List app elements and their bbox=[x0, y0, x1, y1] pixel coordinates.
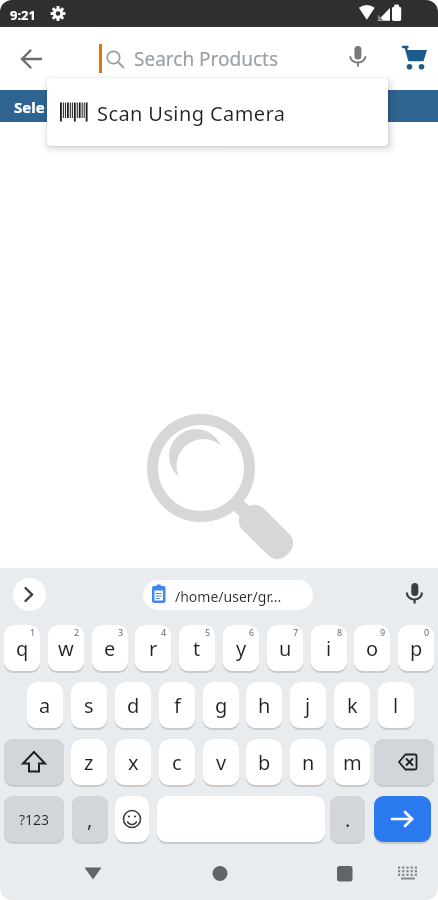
button[interactable]: m bbox=[334, 739, 370, 787]
button[interactable]: q bbox=[4, 625, 40, 673]
staticText: s bbox=[84, 692, 94, 719]
staticText: 9 bbox=[380, 626, 386, 638]
button[interactable]: u bbox=[267, 625, 303, 673]
staticText: . bbox=[345, 806, 351, 833]
button[interactable]: a bbox=[27, 682, 63, 730]
staticText: l bbox=[393, 692, 399, 719]
staticText: w bbox=[58, 635, 74, 662]
staticText: 8 bbox=[337, 626, 343, 638]
staticText: r bbox=[149, 635, 158, 662]
staticText: , bbox=[87, 806, 93, 833]
button[interactable]: x bbox=[115, 739, 151, 787]
staticText: v bbox=[216, 749, 227, 776]
staticText: o bbox=[366, 635, 379, 662]
staticText: a bbox=[39, 692, 51, 719]
staticText: d bbox=[127, 692, 140, 719]
staticText: g bbox=[215, 692, 228, 719]
staticText: j bbox=[305, 692, 311, 719]
staticText: f bbox=[174, 692, 181, 719]
staticText: 9:21 bbox=[10, 6, 36, 24]
staticText: b bbox=[258, 749, 271, 776]
staticText: 3 bbox=[118, 626, 124, 638]
button[interactable]: c bbox=[159, 739, 195, 787]
staticText: 2 bbox=[74, 626, 80, 638]
staticText: ?123 bbox=[19, 810, 50, 829]
button[interactable] bbox=[47, 78, 388, 146]
button[interactable]: t bbox=[179, 625, 215, 673]
staticText: Scan Using Camera bbox=[97, 100, 286, 127]
button[interactable]: k bbox=[334, 682, 370, 730]
staticText: n bbox=[302, 749, 315, 776]
staticText: t bbox=[193, 635, 201, 662]
staticText: Sele bbox=[14, 97, 45, 117]
staticText: 4 bbox=[161, 626, 167, 638]
button[interactable]: d bbox=[115, 682, 151, 730]
staticText: i bbox=[326, 635, 332, 662]
button[interactable] bbox=[10, 38, 52, 80]
button[interactable]: f bbox=[159, 682, 195, 730]
staticText: 5 bbox=[205, 626, 211, 638]
staticText: z bbox=[84, 749, 94, 776]
staticText: 7 bbox=[293, 626, 299, 638]
button[interactable]: ?123 bbox=[4, 796, 64, 844]
button[interactable] bbox=[374, 739, 434, 787]
button[interactable] bbox=[4, 739, 64, 787]
staticText: 6 bbox=[249, 626, 255, 638]
staticText: p bbox=[410, 635, 423, 662]
button[interactable] bbox=[338, 38, 378, 78]
staticText: u bbox=[279, 635, 292, 662]
staticText: x bbox=[128, 749, 139, 776]
staticText: Search Products bbox=[134, 46, 279, 72]
button[interactable] bbox=[374, 796, 431, 844]
staticText: y bbox=[236, 635, 247, 662]
button[interactable]: w bbox=[48, 625, 84, 673]
button[interactable]: y bbox=[223, 625, 259, 673]
button[interactable]: l bbox=[378, 682, 414, 730]
button[interactable]: v bbox=[203, 739, 239, 787]
button[interactable]: r bbox=[135, 625, 171, 673]
button[interactable]: i bbox=[311, 625, 347, 673]
staticText: 1 bbox=[30, 626, 36, 638]
button[interactable]: g bbox=[203, 682, 239, 730]
button[interactable] bbox=[13, 578, 46, 611]
button[interactable]: p bbox=[398, 625, 434, 673]
button[interactable] bbox=[143, 580, 313, 610]
button[interactable] bbox=[396, 38, 436, 78]
button[interactable]: j bbox=[290, 682, 326, 730]
button[interactable]: o bbox=[354, 625, 390, 673]
staticText: q bbox=[16, 635, 29, 662]
staticText: e bbox=[104, 635, 116, 662]
button[interactable] bbox=[73, 854, 113, 894]
button[interactable] bbox=[157, 796, 325, 844]
button[interactable]: e bbox=[92, 625, 128, 673]
staticText: k bbox=[347, 692, 358, 719]
button[interactable] bbox=[200, 854, 240, 894]
button[interactable]: z bbox=[71, 739, 107, 787]
button[interactable]: . bbox=[330, 796, 365, 844]
button[interactable]: n bbox=[290, 739, 326, 787]
staticText: 0 bbox=[424, 626, 430, 638]
button[interactable]: , bbox=[72, 796, 108, 844]
button[interactable] bbox=[325, 854, 365, 894]
button[interactable]: s bbox=[71, 682, 107, 730]
staticText: m bbox=[343, 749, 362, 776]
staticText: c bbox=[172, 749, 182, 776]
button[interactable] bbox=[398, 578, 430, 610]
button[interactable]: b bbox=[246, 739, 282, 787]
staticText: /home/user/gr... bbox=[175, 587, 282, 606]
staticText: h bbox=[258, 692, 271, 719]
button[interactable]: h bbox=[246, 682, 282, 730]
button[interactable] bbox=[115, 796, 149, 844]
